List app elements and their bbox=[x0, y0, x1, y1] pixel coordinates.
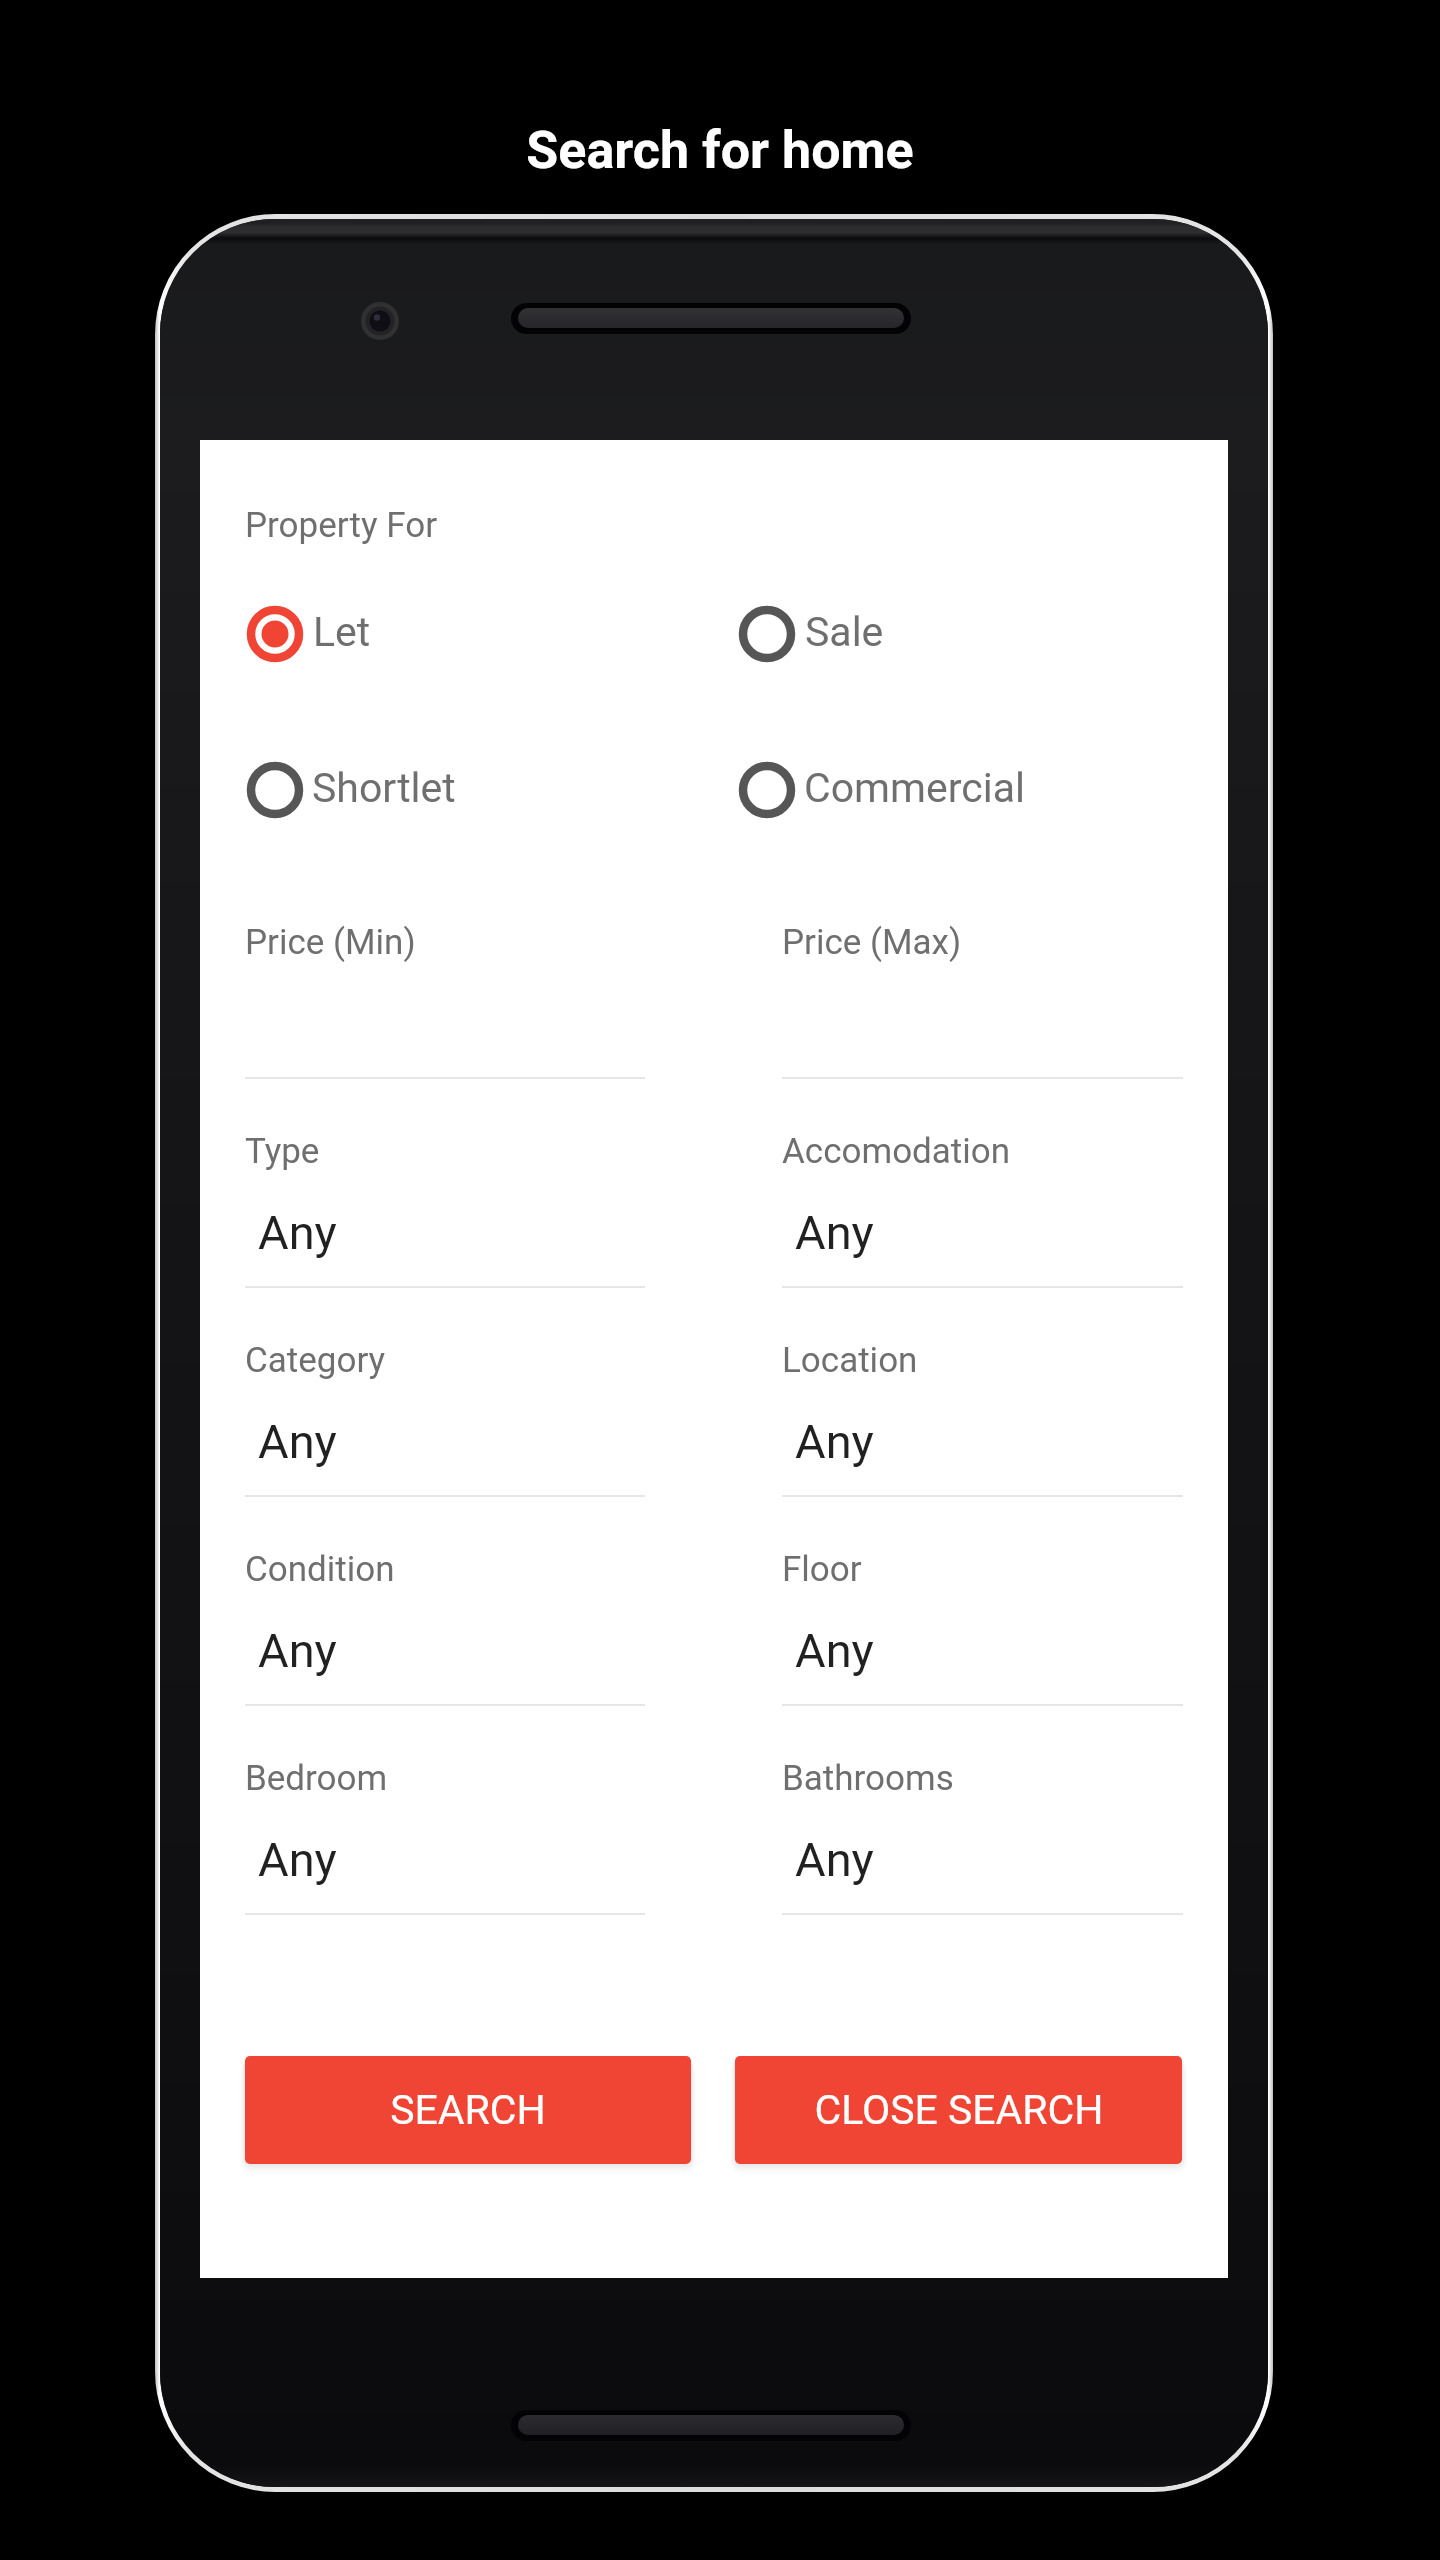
button[interactable]: Type bbox=[245, 1077, 645, 1289]
staticText: Any bbox=[258, 1414, 337, 1469]
button[interactable]: Shortlet bbox=[241, 752, 501, 828]
staticText: Any bbox=[795, 1205, 874, 1260]
staticText: Any bbox=[795, 1623, 874, 1678]
staticText: Bedroom bbox=[245, 1758, 388, 1799]
button[interactable]: Bathrooms bbox=[782, 1704, 1183, 1916]
staticText: SEARCH bbox=[390, 2086, 546, 2134]
staticText: Shortlet bbox=[312, 764, 456, 812]
staticText: Any bbox=[258, 1623, 337, 1678]
staticText: Commercial bbox=[804, 764, 1025, 812]
staticText: Property For bbox=[245, 505, 437, 546]
button[interactable]: Sale bbox=[733, 596, 923, 672]
button[interactable]: Condition bbox=[245, 1495, 645, 1707]
staticText: Location bbox=[782, 1340, 918, 1381]
staticText: Type bbox=[245, 1131, 320, 1172]
button[interactable]: Location bbox=[782, 1286, 1183, 1498]
button[interactable]: Category bbox=[245, 1286, 645, 1498]
button[interactable]: Floor bbox=[782, 1495, 1183, 1707]
button[interactable]: Price (Max) bbox=[782, 868, 1183, 1080]
staticText: Search for home bbox=[0, 120, 1440, 181]
staticText: Sale bbox=[805, 608, 884, 656]
staticText: Any bbox=[258, 1832, 337, 1887]
button[interactable]: Price (Min) bbox=[245, 868, 645, 1080]
button[interactable]: Let bbox=[241, 596, 416, 672]
staticText: Accomodation bbox=[782, 1131, 1011, 1172]
staticText: Any bbox=[795, 1832, 874, 1887]
staticText: Price (Max) bbox=[782, 922, 962, 963]
button[interactable]: SEARCH bbox=[245, 2056, 691, 2164]
staticText: Any bbox=[795, 1414, 874, 1469]
button[interactable]: Accomodation bbox=[782, 1077, 1183, 1289]
staticText: CLOSE SEARCH bbox=[814, 2086, 1104, 2134]
staticText: Price (Min) bbox=[245, 922, 416, 963]
button[interactable]: Bedroom bbox=[245, 1704, 645, 1916]
button[interactable]: CLOSE SEARCH bbox=[735, 2056, 1182, 2164]
staticText: Bathrooms bbox=[782, 1758, 954, 1799]
button[interactable]: Commercial bbox=[733, 752, 1063, 828]
staticText: Let bbox=[313, 608, 371, 656]
staticText: Any bbox=[258, 1205, 337, 1260]
staticText: Floor bbox=[782, 1549, 862, 1590]
staticText: Category bbox=[245, 1340, 386, 1381]
staticText: Condition bbox=[245, 1549, 395, 1590]
